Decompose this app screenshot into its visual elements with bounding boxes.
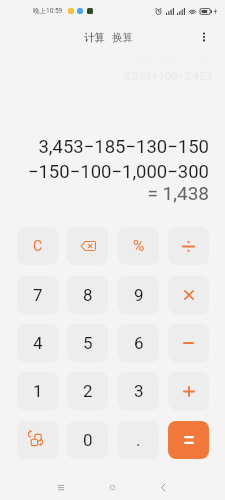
button[interactable]: 8 bbox=[67, 276, 108, 314]
staticText: C bbox=[33, 238, 43, 254]
staticText: 9 bbox=[134, 285, 144, 305]
staticText: 换算 bbox=[112, 31, 133, 44]
button[interactable]: Unit converter bbox=[17, 421, 58, 459]
button[interactable]: 7 bbox=[17, 276, 58, 314]
staticText: 7 bbox=[33, 285, 43, 305]
button[interactable] bbox=[168, 276, 209, 314]
staticText: . bbox=[136, 430, 141, 450]
button[interactable]: . bbox=[118, 421, 159, 459]
button[interactable]: Equals bbox=[168, 421, 209, 459]
button[interactable]: 1 bbox=[17, 372, 58, 410]
staticText: 6 bbox=[134, 333, 144, 353]
staticText: 2 bbox=[83, 381, 93, 401]
button[interactable]: 2 bbox=[67, 372, 108, 410]
staticText: 计算 bbox=[84, 31, 105, 44]
staticText: 3,453−185−130−150 −150−100−1,000−300 bbox=[14, 136, 209, 182]
button[interactable]: 9 bbox=[118, 276, 159, 314]
staticText: 0 bbox=[83, 430, 93, 450]
button[interactable]: C bbox=[17, 227, 58, 265]
button[interactable]: 0 bbox=[67, 421, 108, 459]
staticText: 8 bbox=[83, 285, 93, 305]
button[interactable] bbox=[168, 227, 209, 265]
button[interactable]: Recents bbox=[46, 472, 76, 500]
staticText: 5 bbox=[83, 333, 93, 353]
button[interactable]: 4 bbox=[17, 324, 58, 362]
button[interactable] bbox=[168, 324, 209, 362]
button[interactable]: Backspace bbox=[67, 227, 108, 265]
button[interactable]: 换算 bbox=[110, 26, 137, 49]
button[interactable]: % bbox=[118, 227, 159, 265]
button[interactable]: Back bbox=[148, 472, 178, 500]
button[interactable]: 3 bbox=[118, 372, 159, 410]
button[interactable]: 5 bbox=[67, 324, 108, 362]
staticText: 晚上10:59 bbox=[33, 7, 63, 15]
button[interactable]: Home bbox=[97, 472, 127, 500]
button[interactable]: More options bbox=[192, 25, 216, 49]
staticText: = 1,438 bbox=[14, 182, 209, 204]
staticText: 1 bbox=[33, 381, 43, 401]
staticText: 3 bbox=[134, 381, 144, 401]
staticText: 4 bbox=[33, 333, 43, 353]
button[interactable] bbox=[168, 372, 209, 410]
button[interactable]: 6 bbox=[118, 324, 159, 362]
button[interactable]: 计算 bbox=[79, 26, 110, 49]
staticText: % bbox=[133, 237, 145, 255]
